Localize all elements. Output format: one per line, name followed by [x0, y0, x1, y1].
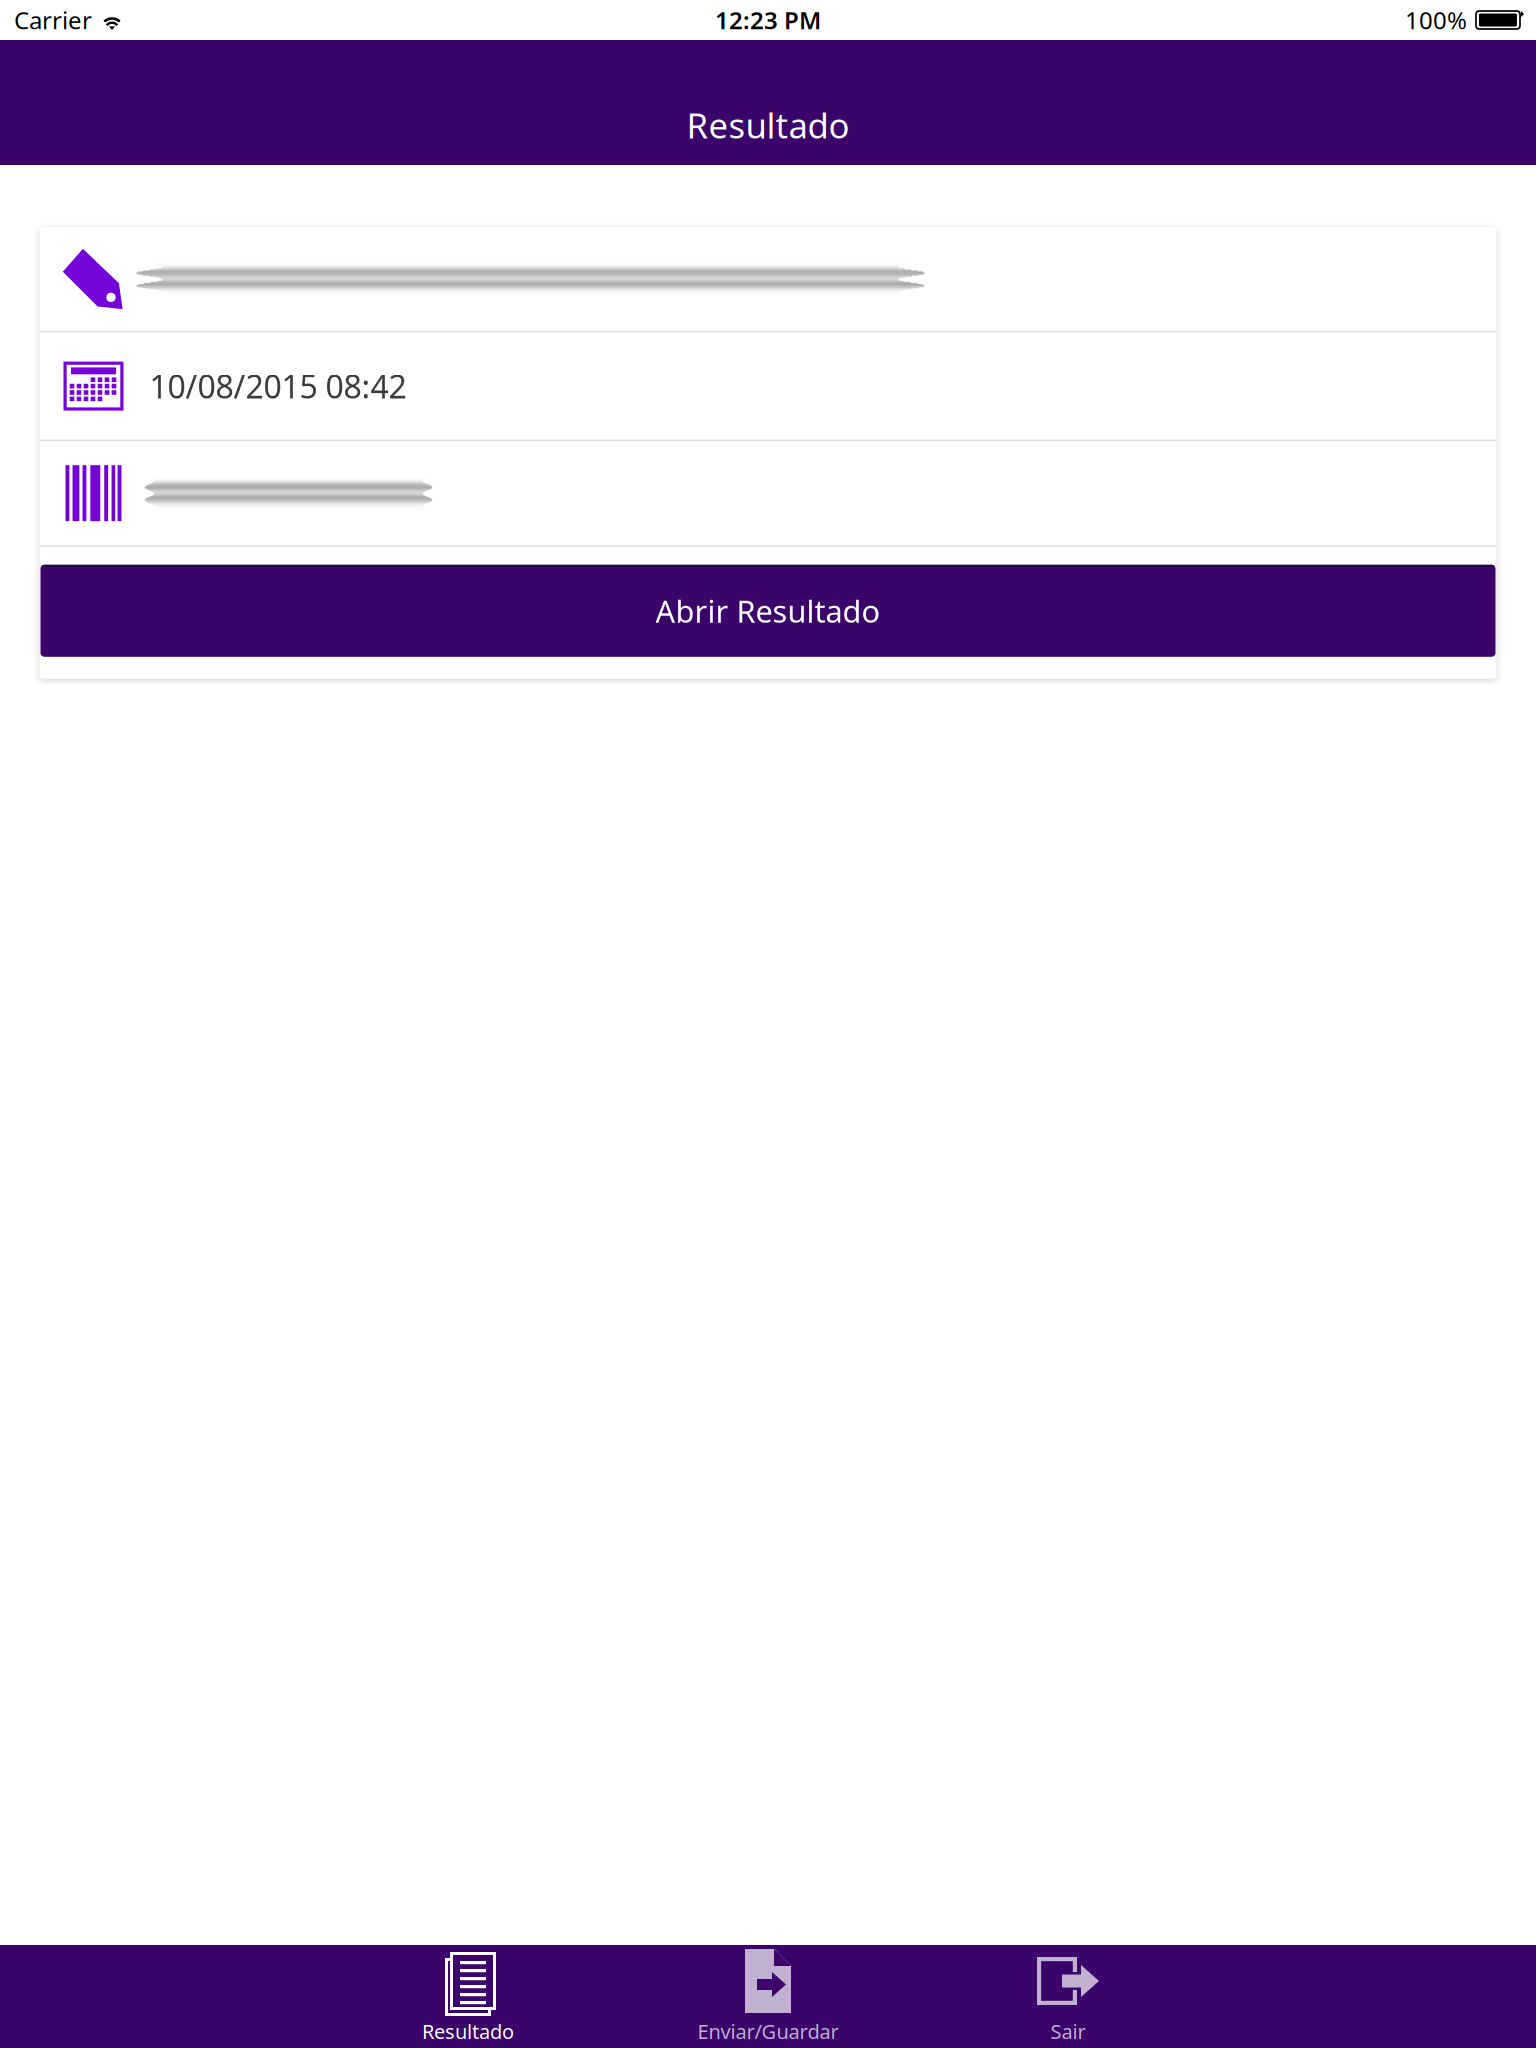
staticText: Enviar/Guardar: [697, 2018, 838, 2045]
button[interactable]: Abrir Resultado: [39, 565, 1496, 657]
staticText: 10/08/2015 08:42: [149, 365, 406, 407]
staticText: Carrier: [14, 4, 92, 36]
button[interactable]: Resultado: [318, 1945, 618, 2048]
staticText: Resultado: [686, 102, 849, 148]
button[interactable]: Enviar/Guardar: [618, 1945, 918, 2048]
staticText: 12:23 PM: [715, 4, 821, 36]
staticText: Sair: [1050, 2018, 1085, 2045]
staticText: Resultado: [422, 2018, 514, 2045]
staticText: 100%: [1405, 4, 1467, 36]
staticText: Abrir Resultado: [655, 590, 880, 631]
button[interactable]: Sair: [918, 1945, 1218, 2048]
